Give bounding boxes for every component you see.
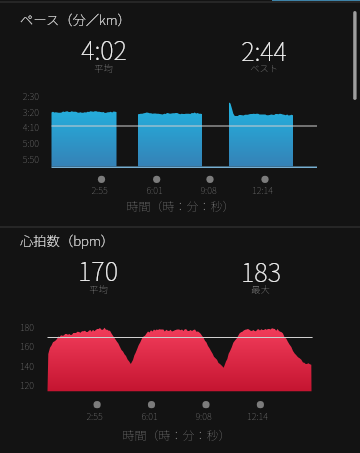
staticText: 時間（時：分：秒）: [126, 197, 235, 214]
staticText: 6:01: [146, 184, 163, 197]
staticText: 160: [19, 340, 34, 353]
staticText: 170: [78, 251, 118, 288]
staticText: 平均: [89, 282, 108, 295]
staticText: 2:55: [91, 184, 108, 197]
button[interactable]: [0, 3, 360, 226]
staticText: 最大: [251, 282, 270, 295]
staticText: 4:10: [22, 121, 39, 134]
button[interactable]: [0, 228, 360, 453]
staticText: 6:01: [141, 410, 158, 423]
staticText: 9:08: [195, 410, 212, 423]
staticText: 5:50: [22, 153, 39, 166]
staticText: 180: [19, 321, 34, 334]
staticText: 9:08: [200, 184, 217, 197]
staticText: 183: [241, 252, 281, 289]
staticText: 2:30: [22, 90, 39, 103]
staticText: ベスト: [250, 61, 278, 74]
staticText: 平均: [94, 61, 113, 74]
staticText: 12:14: [247, 410, 268, 423]
staticText: 3:20: [22, 106, 39, 119]
staticText: 120: [19, 379, 34, 392]
staticText: 140: [19, 360, 34, 373]
staticText: 12:14: [252, 184, 273, 197]
staticText: 心拍数（bpm）: [20, 231, 115, 250]
staticText: 4:02: [81, 30, 127, 67]
staticText: 2:55: [86, 410, 103, 423]
staticText: ペース（分／km）: [20, 10, 131, 29]
staticText: 時間（時：分：秒）: [122, 426, 231, 443]
staticText: 5:00: [22, 137, 39, 150]
staticText: 2:44: [241, 31, 287, 68]
